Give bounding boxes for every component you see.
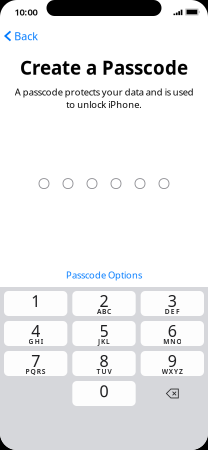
staticText: DEF — [165, 307, 180, 316]
button[interactable]: Passcode Options — [56, 259, 152, 283]
staticText: 4 — [31, 320, 40, 341]
staticText: 3 — [168, 290, 177, 311]
button[interactable]: 3 — [141, 291, 204, 316]
button[interactable]: Back — [0, 24, 44, 45]
button[interactable]: 8 — [72, 351, 136, 376]
staticText: 10:00 — [14, 6, 37, 18]
staticText: 9 — [168, 350, 177, 371]
button[interactable]: 7 — [4, 351, 67, 376]
staticText: 1 — [31, 290, 40, 312]
button[interactable]: 9 — [141, 351, 204, 376]
button[interactable]: Delete — [141, 381, 204, 406]
button[interactable]: 6 — [141, 321, 204, 346]
staticText: 8 — [99, 350, 108, 371]
button[interactable]: 2 — [72, 291, 136, 316]
staticText: 2 — [99, 290, 108, 311]
staticText: 6 — [168, 320, 177, 341]
staticText: A passcode protects your data and is use… — [14, 86, 193, 111]
staticText: GHI — [29, 337, 43, 346]
button[interactable]: 5 — [72, 321, 136, 346]
staticText: 5 — [99, 320, 108, 341]
staticText: 7 — [31, 350, 40, 371]
staticText: 0 — [99, 380, 108, 402]
button[interactable]: 4 — [4, 321, 67, 346]
staticText: TUV — [96, 367, 112, 376]
staticText: JKL — [98, 337, 110, 346]
button[interactable]: 0 — [72, 381, 136, 406]
staticText: Passcode Options — [66, 269, 142, 281]
staticText: PQRS — [25, 367, 46, 376]
staticText: Back — [14, 29, 38, 43]
button[interactable]: 1 — [4, 291, 67, 316]
staticText: WXYZ — [162, 367, 183, 376]
staticText: ABC — [97, 307, 111, 316]
staticText: Create a Passcode — [20, 55, 188, 80]
staticText: MNO — [163, 337, 181, 346]
